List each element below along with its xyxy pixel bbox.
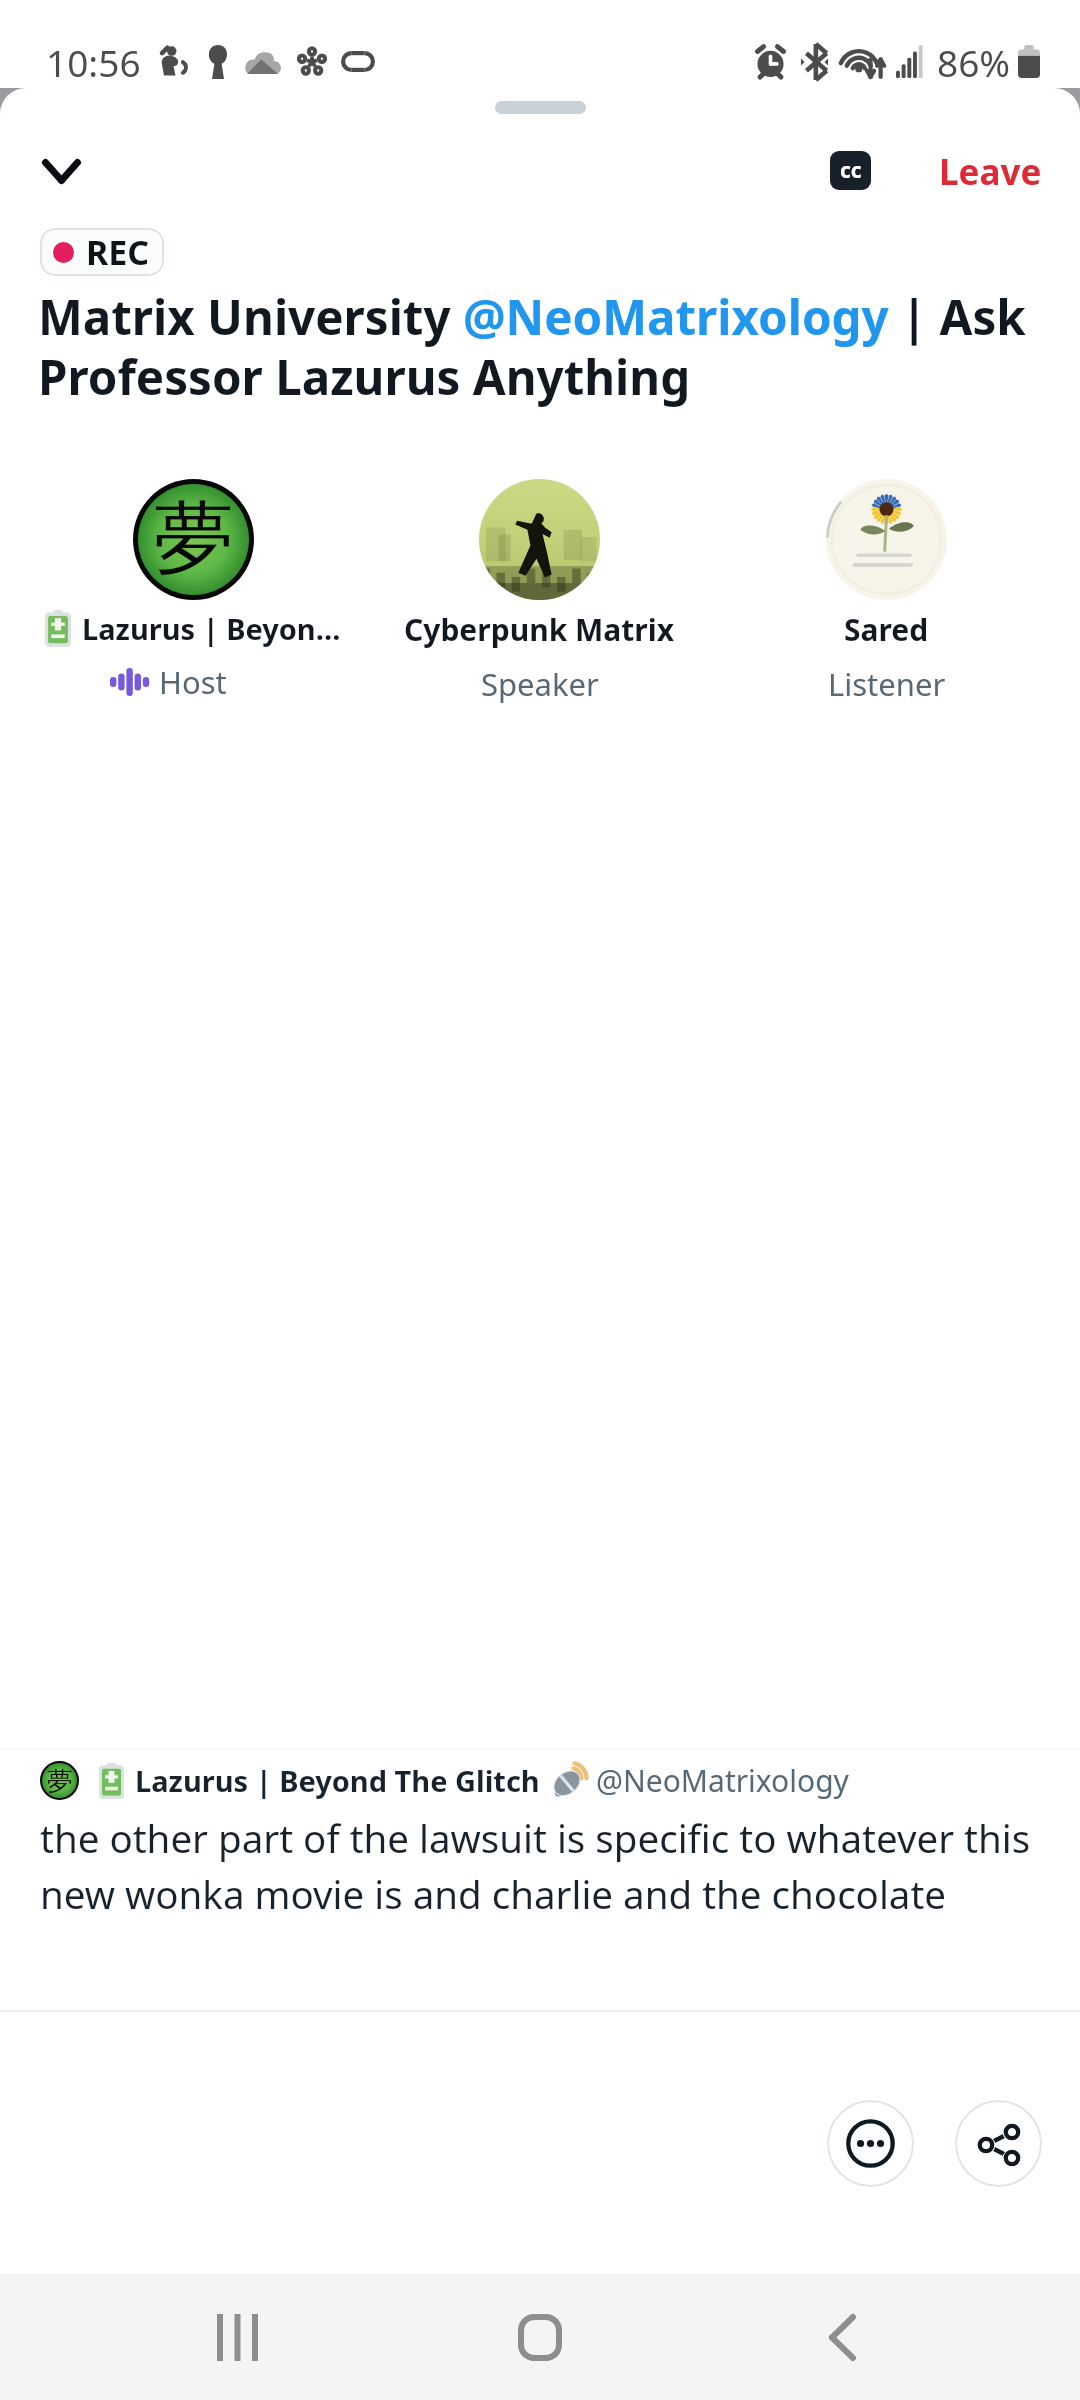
staticText: 86% <box>937 37 1011 87</box>
staticText: Speaker <box>481 663 599 705</box>
button[interactable]: Captions <box>830 151 871 190</box>
button[interactable]: Cyberpunk Matrix <box>366 479 713 705</box>
button[interactable]: Recent apps <box>86 2274 388 2400</box>
staticText: 10:56 <box>46 37 141 87</box>
button[interactable]: 夢 <box>20 479 366 703</box>
button[interactable]: More options <box>827 2100 914 2187</box>
button[interactable]: REC <box>40 228 164 276</box>
staticText: Lazurus | Beyon… <box>82 609 341 648</box>
staticText: Listener <box>828 663 946 705</box>
staticText: Matrix University @NeoMatrixology | Ask … <box>38 284 1054 409</box>
button[interactable]: Sared <box>713 479 1060 705</box>
staticText: Lazurus | Beyond The Glitch <box>135 1761 540 1800</box>
staticText: cc <box>840 156 862 185</box>
staticText: @NeoMatrixology <box>596 1760 849 1801</box>
button[interactable]: Share <box>955 2100 1042 2187</box>
staticText: the other part of the lawsuit is specifi… <box>40 1812 1040 1920</box>
button[interactable]: Home <box>388 2274 691 2400</box>
button[interactable]: Collapse <box>23 148 100 192</box>
staticText: Sared <box>844 609 929 650</box>
staticText: 夢 <box>47 1765 73 1797</box>
button[interactable]: Leave <box>939 148 1042 192</box>
staticText: REC <box>86 229 150 275</box>
staticText: Leave <box>939 148 1042 192</box>
staticText: Cyberpunk Matrix <box>404 609 675 650</box>
button[interactable]: Back <box>691 2274 994 2400</box>
staticText: Host <box>159 661 227 703</box>
staticText: 夢 <box>154 489 234 590</box>
